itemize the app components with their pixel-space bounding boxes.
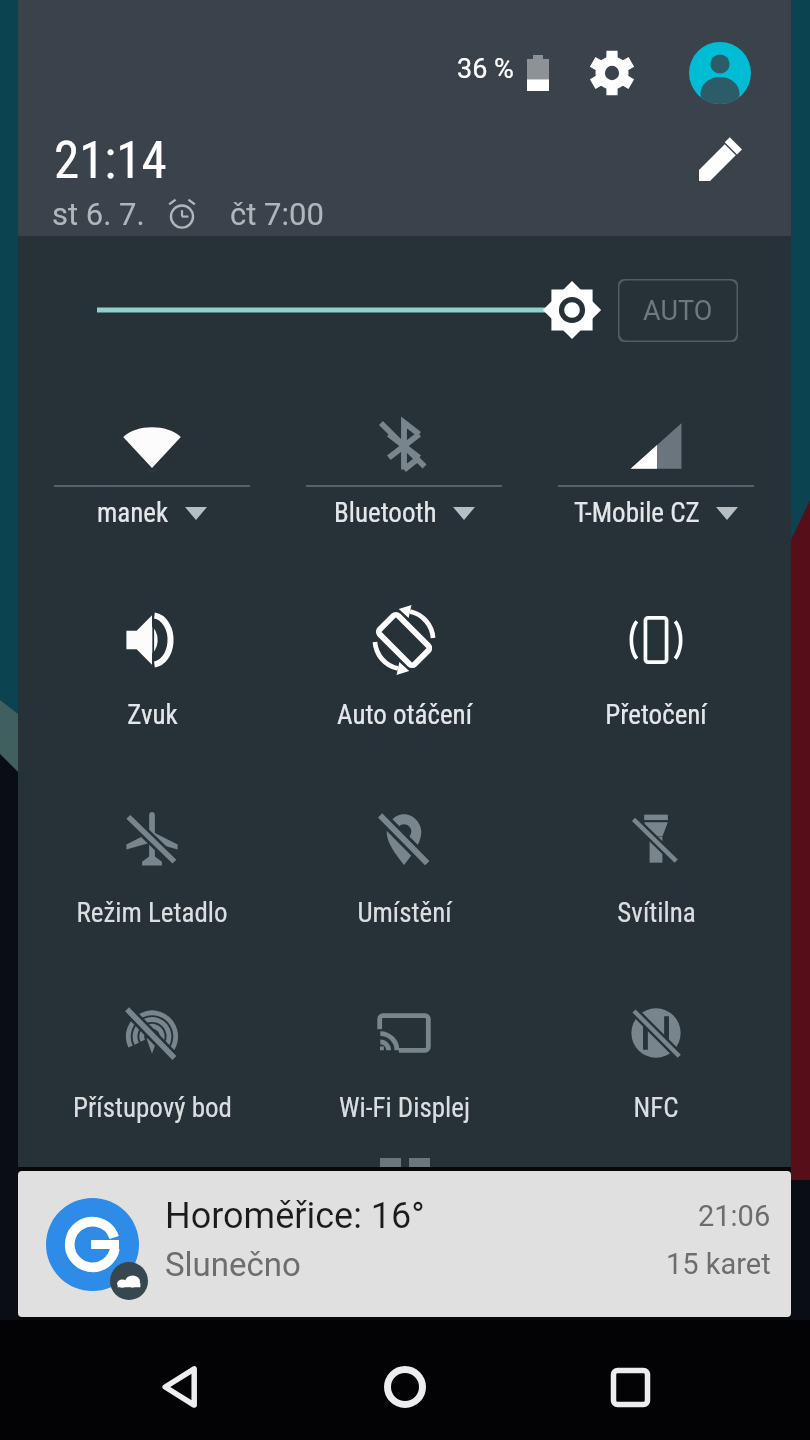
staticText: Bluetooth	[334, 497, 437, 529]
button[interactable]: T-Mobile CZ	[530, 392, 782, 536]
button[interactable]: Wi-Fi Displej	[278, 975, 530, 1128]
button[interactable]: Bluetooth	[278, 392, 530, 536]
staticText: st 6. 7.	[52, 196, 145, 232]
button[interactable]: Přetočení	[530, 582, 782, 735]
staticText: Přístupový bod	[73, 1092, 232, 1124]
staticText: čt 7:00	[230, 196, 324, 232]
staticText: Režim Letadlo	[76, 897, 228, 929]
staticText: Přetočení	[605, 699, 707, 731]
button[interactable]: Přístupový bod	[26, 975, 278, 1128]
staticText: manek	[97, 497, 169, 529]
staticText: 15 karet	[666, 1247, 771, 1281]
button[interactable]: Back	[121, 1327, 241, 1440]
staticText: Zvuk	[127, 699, 178, 731]
staticText: Wi-Fi Displej	[339, 1092, 470, 1124]
staticText: Auto otáčení	[337, 699, 472, 731]
button[interactable]: Recent apps	[570, 1327, 690, 1440]
staticText: Horoměřice: 16°	[165, 1195, 425, 1237]
button[interactable]: Auto otáčení	[278, 582, 530, 735]
button[interactable]: Home	[345, 1327, 465, 1440]
button[interactable]: Zvuk	[26, 582, 278, 735]
staticText: Svítilna	[617, 897, 696, 929]
staticText: 21:14	[54, 131, 167, 191]
staticText: AUTO	[643, 295, 713, 327]
button[interactable]: AUTO	[618, 279, 738, 342]
staticText: NFC	[633, 1092, 679, 1124]
staticText: 36 %	[457, 53, 514, 85]
staticText: Slunečno	[165, 1245, 301, 1284]
button[interactable]: User profile	[686, 39, 754, 107]
button[interactable]: Edit	[688, 124, 756, 192]
button[interactable]: Horoměřice: 16°	[18, 1171, 791, 1317]
button[interactable]: manek	[26, 392, 278, 536]
button[interactable]: Režim Letadlo	[26, 780, 278, 933]
button[interactable]: NFC	[530, 975, 782, 1128]
button[interactable]: Settings	[578, 39, 646, 107]
button[interactable]: Svítilna	[530, 780, 782, 933]
staticText: 21:06	[698, 1199, 771, 1233]
button[interactable]: Umístění	[278, 780, 530, 933]
button[interactable]: Brightness	[88, 275, 608, 347]
staticText: Umístění	[357, 897, 452, 929]
staticText: T-Mobile CZ	[574, 497, 700, 529]
